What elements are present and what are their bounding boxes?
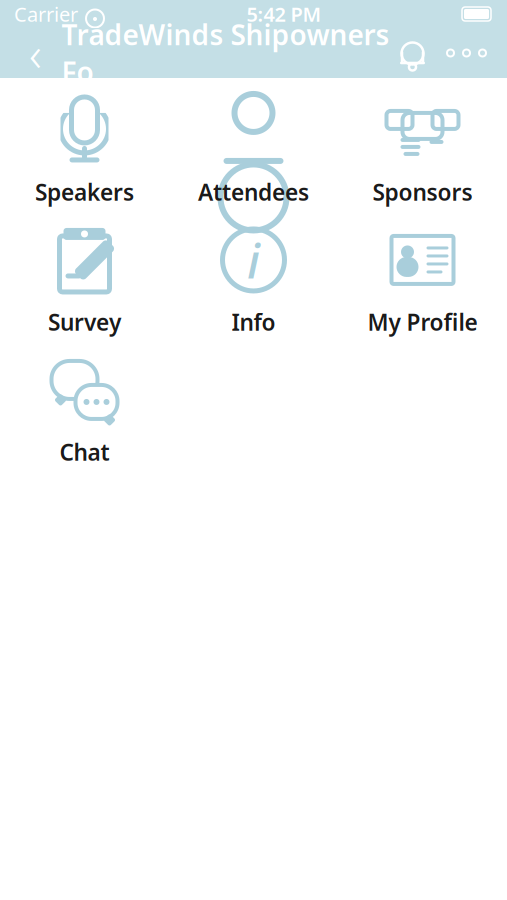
button[interactable]: Back — [9, 28, 61, 78]
staticText: Carrier — [14, 1, 78, 27]
button[interactable]: Chat — [0, 346, 169, 476]
button[interactable]: Survey — [0, 216, 169, 346]
button[interactable]: Notifications — [389, 28, 435, 78]
button[interactable]: My Profile — [338, 216, 507, 346]
staticText: 5:42 PM — [246, 1, 321, 27]
button[interactable]: i — [169, 216, 338, 346]
button[interactable]: Speakers — [0, 86, 169, 216]
staticText: ‹ — [29, 21, 42, 85]
staticText: i — [247, 228, 260, 292]
staticText: Sponsors — [372, 177, 472, 207]
button[interactable]: Attendees — [169, 86, 338, 216]
staticText: My Profile — [367, 307, 477, 337]
staticText: Chat — [59, 437, 109, 467]
staticText: Survey — [48, 307, 121, 337]
staticText: Info — [231, 307, 275, 337]
staticText: Attendees — [198, 177, 309, 207]
button[interactable]: More options — [435, 28, 497, 78]
staticText: Speakers — [35, 177, 134, 207]
staticText: TradeWinds Shipowners Fo... — [61, 16, 389, 90]
button[interactable]: Sponsors — [338, 86, 507, 216]
